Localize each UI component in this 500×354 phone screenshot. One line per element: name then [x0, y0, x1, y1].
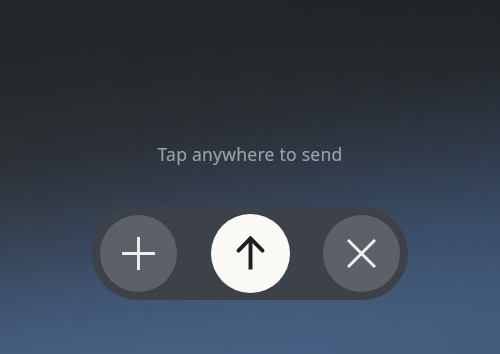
- button[interactable]: Tap anywhere to send: [0, 0, 500, 354]
- button[interactable]: Add attachment: [100, 215, 177, 292]
- staticText: Tap anywhere to send: [157, 142, 343, 166]
- button[interactable]: Cancel: [323, 215, 400, 292]
- button[interactable]: Send: [211, 214, 290, 293]
